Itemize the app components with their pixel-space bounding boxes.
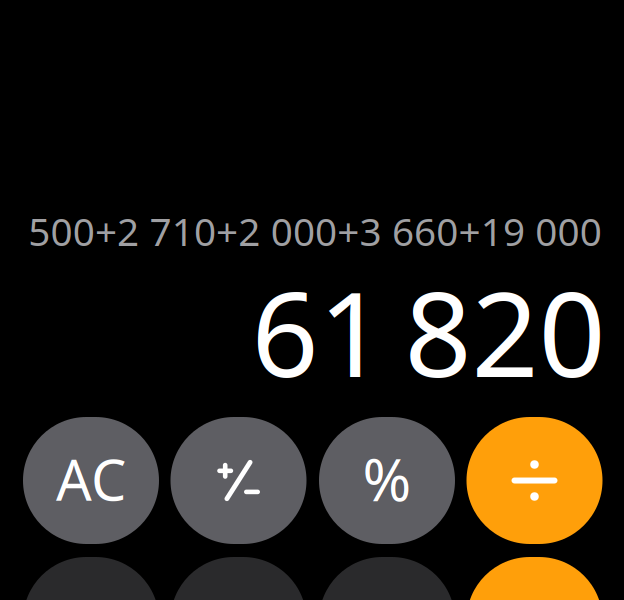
- button[interactable]: Plus minus: [170, 417, 306, 544]
- button[interactable]: AC: [23, 417, 159, 544]
- button[interactable]: 7: [23, 557, 159, 600]
- button[interactable]: Multiply: [466, 557, 602, 600]
- staticText: %: [362, 439, 411, 517]
- staticText: 500+2 710+2 000+3 660+19 000: [28, 205, 602, 257]
- button[interactable]: %: [319, 417, 455, 544]
- button[interactable]: Divide: [466, 417, 602, 544]
- button[interactable]: 8: [170, 557, 306, 600]
- staticText: AC: [56, 442, 126, 516]
- button[interactable]: 9: [319, 557, 455, 600]
- staticText: 61 820: [251, 254, 605, 409]
